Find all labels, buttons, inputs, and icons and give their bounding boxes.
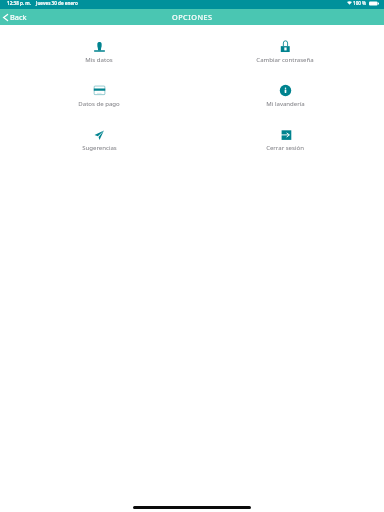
other: Home indicator (133, 506, 251, 509)
staticText: Cambiar contraseña (256, 56, 314, 64)
button[interactable]: Mis datos (6, 37, 192, 81)
staticText: Mis datos (85, 56, 113, 64)
staticText: Jueves 30 de enero (36, 0, 78, 6)
button[interactable]: Mi lavandería (192, 81, 378, 125)
button[interactable]: Cerrar sesión (192, 125, 378, 169)
staticText: OPCIONES (172, 12, 213, 22)
staticText: Back (10, 12, 27, 22)
button[interactable]: Back (0, 9, 32, 25)
staticText: Datos de pago (78, 100, 120, 108)
staticText: Sugerencias (82, 144, 117, 152)
staticText: Cerrar sesión (266, 144, 304, 152)
button[interactable]: Sugerencias (6, 125, 192, 169)
button[interactable]: Cambiar contraseña (192, 37, 378, 81)
staticText: 100 % (353, 0, 367, 6)
staticText: 12:38 p. m. (7, 0, 31, 6)
staticText: Mi lavandería (266, 100, 305, 108)
button[interactable]: Datos de pago (6, 81, 192, 125)
